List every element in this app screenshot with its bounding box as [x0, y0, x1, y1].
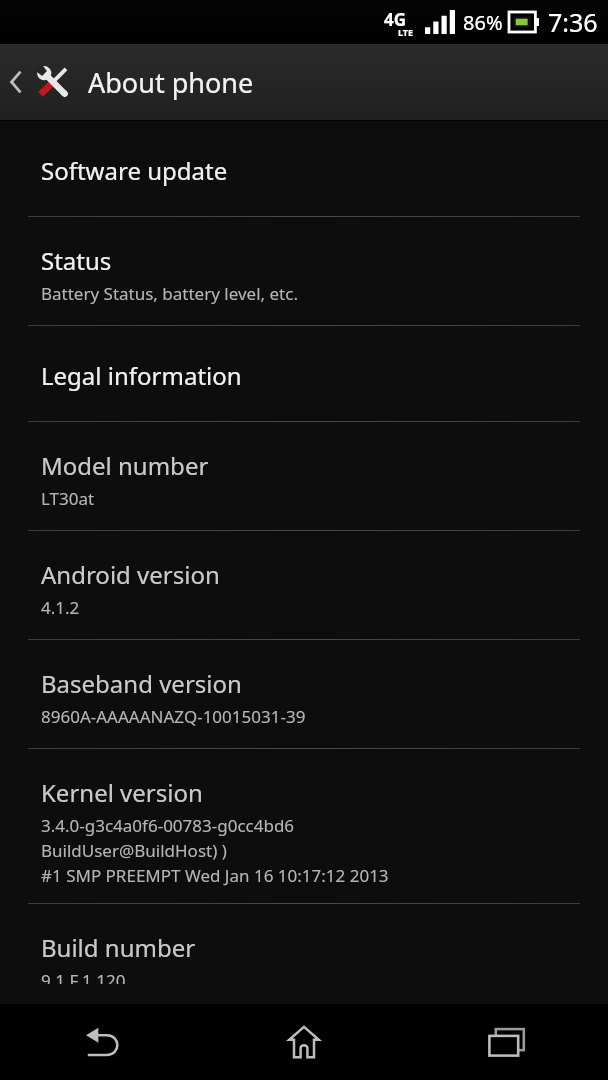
staticText: Build number: [41, 931, 196, 964]
staticText: Kernel version: [41, 776, 203, 809]
staticText: Model number: [41, 449, 209, 482]
staticText: 9.1.F.1.120: [41, 969, 126, 984]
button[interactable]: Up, About phone: [0, 44, 608, 120]
button[interactable]: Kernel version: [0, 749, 608, 903]
staticText: LT30at: [41, 487, 95, 510]
button[interactable]: Baseband version: [0, 640, 608, 748]
staticText: About phone: [88, 64, 254, 101]
button[interactable]: Home: [202, 1004, 405, 1080]
staticText: 7:36: [548, 5, 598, 39]
staticText: LTE: [398, 26, 414, 38]
button[interactable]: Recent apps: [405, 1004, 608, 1080]
staticText: #1 SMP PREEMPT Wed Jan 16 10:17:12 2013: [41, 864, 389, 887]
button[interactable]: Software update: [0, 121, 608, 216]
staticText: Legal information: [41, 359, 242, 392]
staticText: 4.1.2: [41, 596, 80, 619]
staticText: 86%: [463, 9, 503, 36]
staticText: BuildUser@BuildHost) ): [41, 839, 227, 862]
button[interactable]: Build number: [0, 904, 608, 1004]
button[interactable]: Android version: [0, 531, 608, 639]
button[interactable]: Back: [0, 1004, 202, 1080]
staticText: 3.4.0-g3c4a0f6-00783-g0cc4bd6: [41, 814, 295, 837]
staticText: 4G: [384, 8, 407, 31]
button[interactable]: Model number: [0, 422, 608, 530]
button[interactable]: Legal information: [0, 326, 608, 421]
staticText: Software update: [41, 154, 228, 187]
staticText: 8960A-AAAAANAZQ-10015031-39: [41, 705, 306, 728]
staticText: Battery Status, battery level, etc.: [41, 282, 298, 305]
staticText: Baseband version: [41, 667, 242, 700]
staticText: Status: [41, 244, 112, 277]
button[interactable]: Status: [0, 217, 608, 325]
staticText: Android version: [41, 558, 220, 591]
